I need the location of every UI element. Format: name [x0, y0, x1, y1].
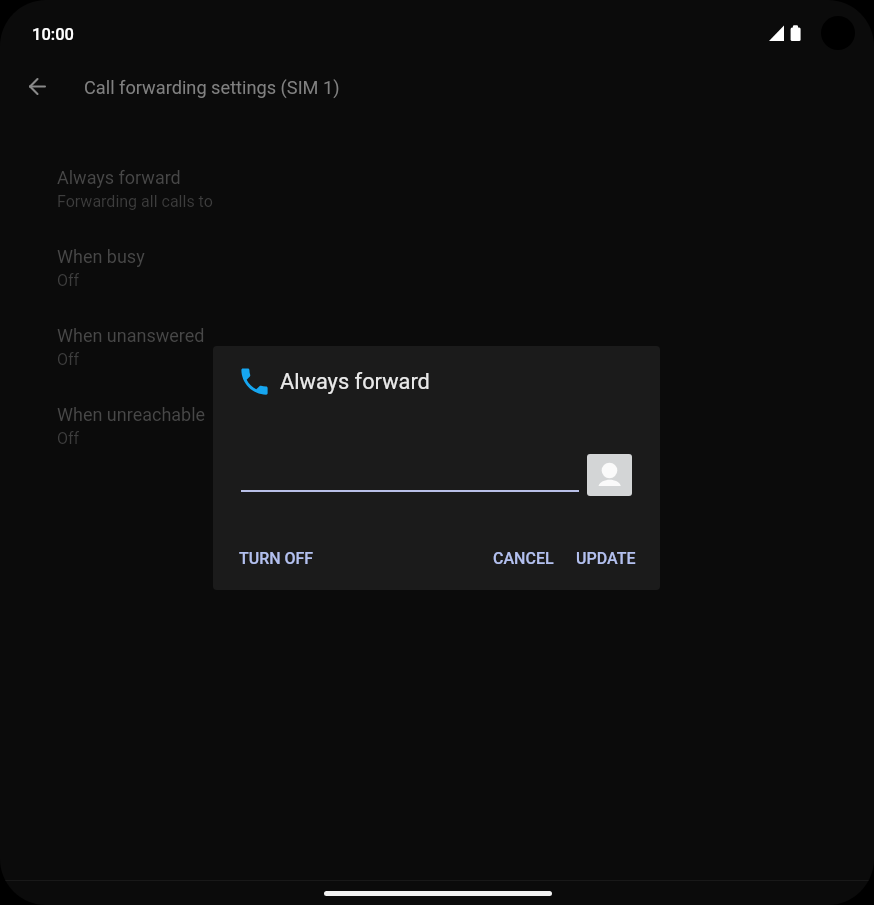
staticText: Call forwarding settings (SIM 1): [84, 77, 340, 98]
staticText: When busy: [57, 246, 145, 267]
button[interactable]: Pick contact: [587, 454, 632, 496]
staticText: UPDATE: [576, 549, 636, 568]
staticText: TURN OFF: [239, 549, 314, 568]
staticText: Always forward: [280, 369, 430, 395]
staticText: Off: [57, 429, 80, 448]
button[interactable]: When unanswered: [0, 315, 874, 394]
button[interactable]: When busy: [0, 236, 874, 315]
button[interactable]: When unreachable: [0, 394, 874, 473]
button[interactable]: Always forward: [0, 157, 874, 236]
staticText: Forwarding all calls to: [57, 192, 213, 211]
button[interactable]: Back: [13, 62, 61, 110]
staticText: When unanswered: [57, 325, 205, 346]
staticText: Always forward: [57, 167, 181, 188]
button[interactable]: UPDATE: [568, 539, 644, 575]
button[interactable]: CANCEL: [485, 539, 562, 575]
staticText: When unreachable: [57, 404, 206, 425]
staticText: Off: [57, 350, 80, 369]
button[interactable]: TURN OFF: [231, 539, 322, 575]
staticText: 10:00: [32, 25, 74, 44]
staticText: Off: [57, 271, 80, 290]
staticText: CANCEL: [493, 549, 554, 568]
